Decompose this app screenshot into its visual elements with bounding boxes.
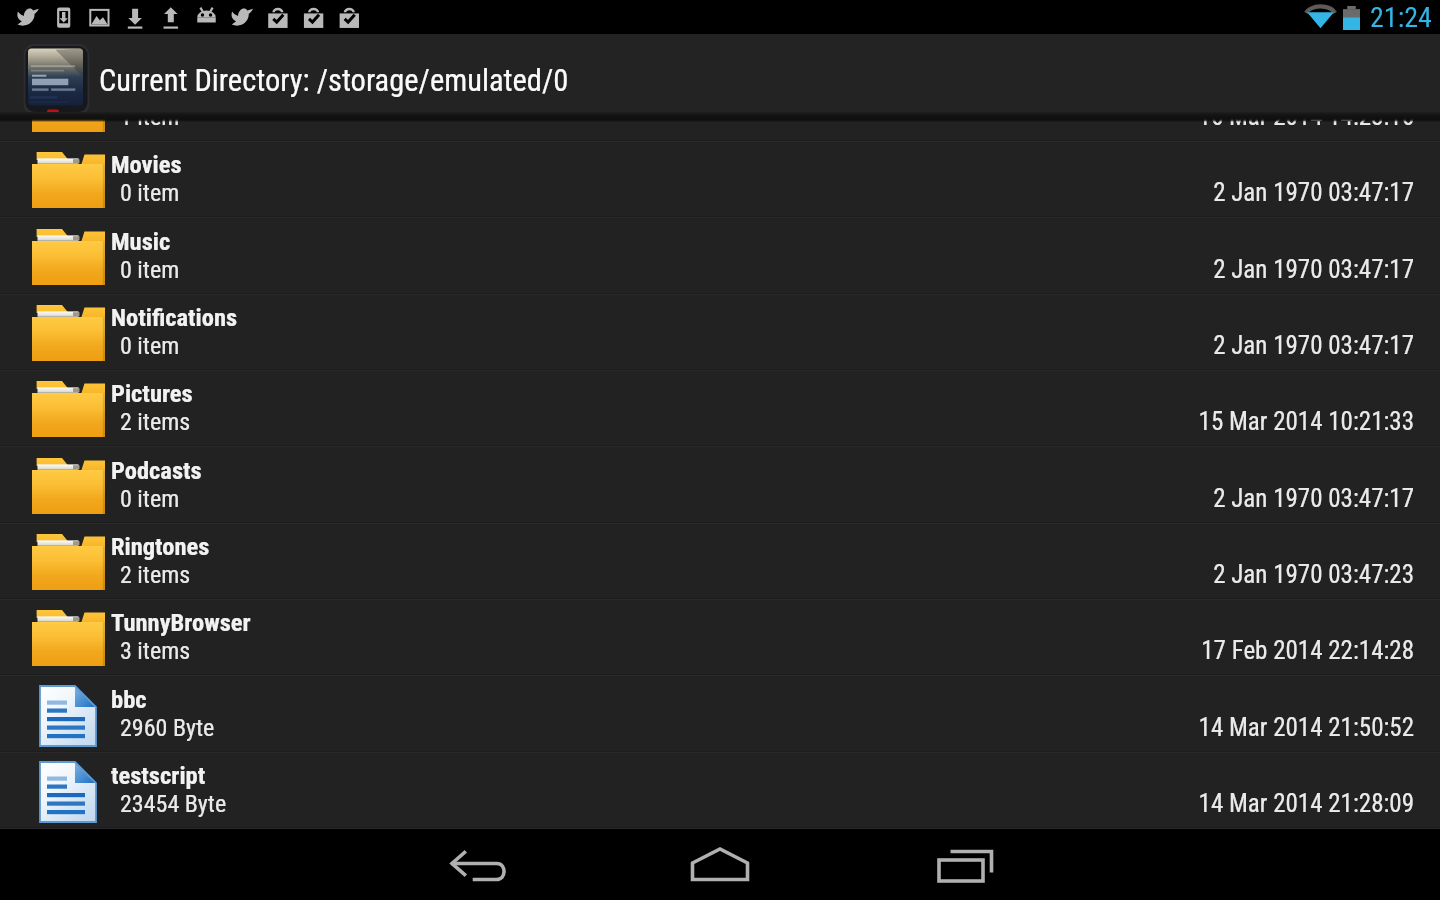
staticText: 2 items	[120, 561, 191, 589]
staticText: 16 Mar 2014 14:23:16	[1198, 113, 1414, 131]
button[interactable]: Movies	[0, 142, 1440, 218]
staticText: 21:24	[1370, 1, 1432, 34]
staticText: Ringtones	[111, 532, 210, 561]
button[interactable]: Notifications	[0, 295, 1440, 371]
button[interactable]: Home	[640, 829, 800, 900]
staticText: 1 item	[120, 113, 180, 131]
button[interactable]: App icon, navigate up	[21, 42, 91, 116]
button[interactable]: TunnyBrowser	[0, 600, 1440, 676]
button[interactable]: Ringtones	[0, 524, 1440, 600]
button[interactable]: bbc	[0, 677, 1440, 753]
staticText: 3 items	[120, 637, 191, 665]
staticText: 0 item	[120, 256, 180, 284]
staticText: 2 Jan 1970 03:47:17	[1213, 484, 1414, 513]
staticText: 14 Mar 2014 21:28:09	[1198, 789, 1414, 818]
staticText: Music	[111, 227, 171, 256]
staticText: Notifications	[111, 303, 238, 332]
staticText: 2 Jan 1970 03:47:17	[1213, 178, 1414, 207]
staticText: 0 item	[120, 332, 180, 360]
button[interactable]: Download	[0, 113, 1440, 142]
staticText: bbc	[111, 685, 147, 714]
staticText: Pictures	[111, 379, 193, 408]
button[interactable]: testscript	[0, 753, 1440, 829]
staticText: 14 Mar 2014 21:50:52	[1198, 713, 1414, 742]
button[interactable]: Podcasts	[0, 448, 1440, 524]
staticText: Movies	[111, 150, 182, 179]
button[interactable]: Pictures	[0, 371, 1440, 447]
staticText: 2960 Byte	[120, 714, 215, 742]
staticText: testscript	[111, 761, 206, 790]
staticText: 2 Jan 1970 03:47:17	[1213, 255, 1414, 284]
staticText: 23454 Byte	[120, 790, 227, 818]
staticText: Current Directory: /storage/emulated/0	[99, 63, 569, 99]
staticText: 17 Feb 2014 22:14:28	[1201, 636, 1414, 665]
button[interactable]: Music	[0, 219, 1440, 295]
staticText: TunnyBrowser	[111, 608, 251, 637]
button[interactable]: Back	[398, 829, 558, 900]
staticText: Podcasts	[111, 456, 202, 485]
button[interactable]: Recent apps	[884, 829, 1044, 900]
staticText: 2 items	[120, 408, 191, 436]
staticText: 15 Mar 2014 10:21:33	[1198, 407, 1414, 436]
staticText: 0 item	[120, 485, 180, 513]
staticText: 0 item	[120, 179, 180, 207]
staticText: 2 Jan 1970 03:47:17	[1213, 331, 1414, 360]
staticText: 2 Jan 1970 03:47:23	[1213, 560, 1414, 589]
